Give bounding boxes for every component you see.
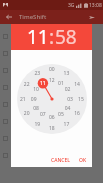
staticText: 58 <box>55 24 77 50</box>
button[interactable] <box>0 45 103 62</box>
button[interactable]: 58 <box>55 24 77 50</box>
staticText: : <box>49 24 55 50</box>
staticText: CANCEL <box>51 157 70 164</box>
button[interactable]: OK <box>77 154 89 167</box>
button[interactable] <box>0 62 103 79</box>
staticText: 13:08 <box>89 2 102 9</box>
button[interactable] <box>0 28 103 45</box>
button[interactable] <box>0 96 103 113</box>
button[interactable]: Clock dial <box>17 64 87 134</box>
button[interactable] <box>0 130 103 147</box>
staticText: 3G <box>68 2 75 9</box>
button[interactable]: 11 <box>27 24 49 50</box>
button[interactable] <box>0 113 103 130</box>
button[interactable]: Send <box>85 10 99 24</box>
staticText: TimeShift <box>19 13 47 21</box>
button[interactable]: CANCEL <box>49 154 72 167</box>
staticText: 11 <box>27 24 49 50</box>
button[interactable]: Back <box>2 10 16 24</box>
staticText: OK <box>79 157 87 164</box>
button[interactable] <box>0 79 103 96</box>
button[interactable] <box>0 147 103 164</box>
